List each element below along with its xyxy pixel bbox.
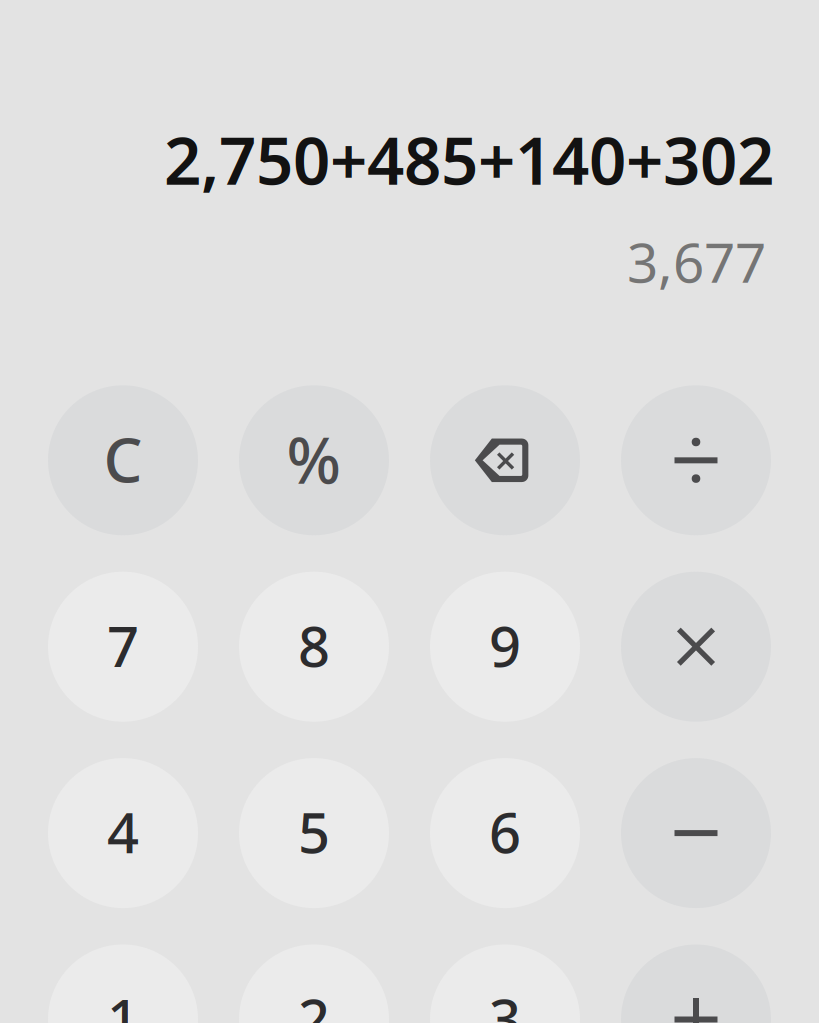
button[interactable]: 6 [430,758,580,908]
staticText: 5 [298,794,330,869]
button[interactable]: 9 [430,572,580,722]
button[interactable]: % [239,385,389,535]
button[interactable]: 5 [239,758,389,908]
staticText: 9 [489,608,521,682]
staticText: 3,677 [627,225,766,298]
staticText: 2,750+485+140+302 [164,116,774,203]
staticText: 7 [107,608,139,682]
button[interactable]: 1 [48,944,198,1023]
staticText: 6 [489,794,521,869]
staticText: 3 [489,981,521,1023]
button[interactable]: 7 [48,572,198,722]
staticText: 1 [107,981,139,1023]
button[interactable]: 4 [48,758,198,908]
staticText: 2 [298,981,330,1023]
staticText: 8 [298,608,330,682]
staticText: C [103,418,142,499]
button[interactable]: Divide [621,385,771,535]
staticText: 4 [107,794,139,869]
button[interactable]: 2 [239,944,389,1023]
staticText: % [286,416,341,501]
button[interactable]: 3 [430,944,580,1023]
button[interactable]: Multiply [621,572,771,722]
button[interactable]: Subtract [621,758,771,908]
button[interactable]: C [48,385,198,535]
button[interactable]: Delete [430,385,580,535]
button[interactable]: 8 [239,572,389,722]
button[interactable]: Add [621,944,771,1023]
